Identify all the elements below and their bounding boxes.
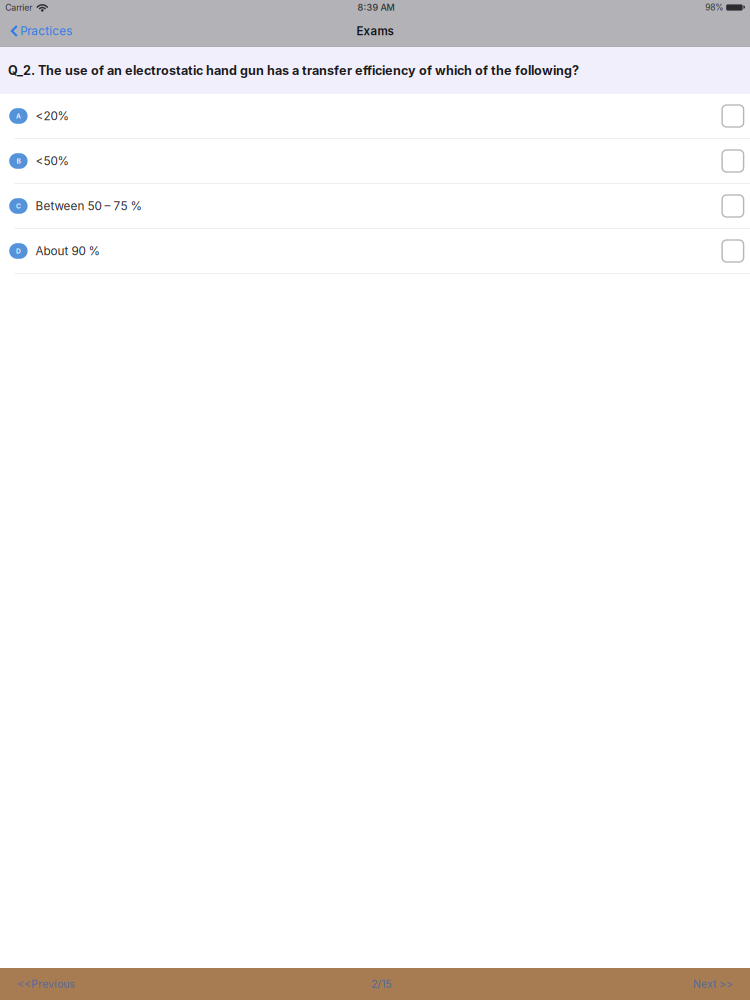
staticText: Between 50 – 75 % <box>35 199 142 213</box>
staticText: Practices <box>20 24 72 38</box>
button[interactable]: Select answer C <box>722 195 744 217</box>
staticText: Next >> <box>693 978 733 990</box>
button[interactable]: Select answer D <box>722 240 744 262</box>
button[interactable]: Next >> <box>681 968 750 1000</box>
button[interactable]: B <box>0 139 750 184</box>
staticText: About 90 % <box>35 244 100 258</box>
staticText: A <box>16 112 21 120</box>
button[interactable]: <<Previous <box>0 968 81 1000</box>
button[interactable]: Select answer A <box>722 105 744 127</box>
staticText: B <box>16 157 20 165</box>
staticText: Exams <box>356 24 393 38</box>
button[interactable]: Practices <box>0 15 82 47</box>
staticText: <50% <box>35 154 69 168</box>
staticText: <20% <box>35 109 69 123</box>
staticText: C <box>16 202 21 210</box>
button[interactable]: D <box>0 229 750 274</box>
staticText: 2/15 <box>371 978 391 990</box>
staticText: <<Previous <box>17 978 75 990</box>
staticText: 98% <box>705 2 723 13</box>
button[interactable]: Select answer B <box>722 150 744 172</box>
staticText: Carrier <box>5 2 32 13</box>
staticText: 8:39 AM <box>357 2 394 13</box>
button[interactable]: C <box>0 184 750 229</box>
button[interactable]: A <box>0 94 750 139</box>
staticText: Q_2. The use of an electrostatic hand gu… <box>8 63 579 78</box>
staticText: D <box>16 247 21 255</box>
